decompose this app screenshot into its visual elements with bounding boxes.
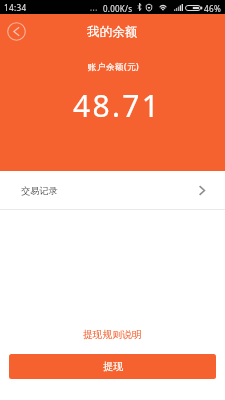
button[interactable]: Back bbox=[7, 22, 26, 41]
staticText: 提现规则说明 bbox=[83, 329, 142, 341]
staticText: 48.71 bbox=[73, 85, 162, 126]
button[interactable]: 提现 bbox=[9, 354, 216, 379]
staticText: 提现 bbox=[103, 360, 123, 373]
staticText: 0.00K/s bbox=[103, 3, 133, 14]
button[interactable]: 交易记录 bbox=[0, 171, 225, 209]
staticText: 46% bbox=[204, 3, 222, 14]
staticText: 交易记录 bbox=[21, 185, 58, 197]
staticText: 账户余额(元) bbox=[88, 61, 139, 73]
staticText: 14:34 bbox=[4, 2, 27, 13]
staticText: 我的余额 bbox=[87, 24, 138, 40]
button[interactable]: 提现规则说明 bbox=[0, 327, 225, 343]
